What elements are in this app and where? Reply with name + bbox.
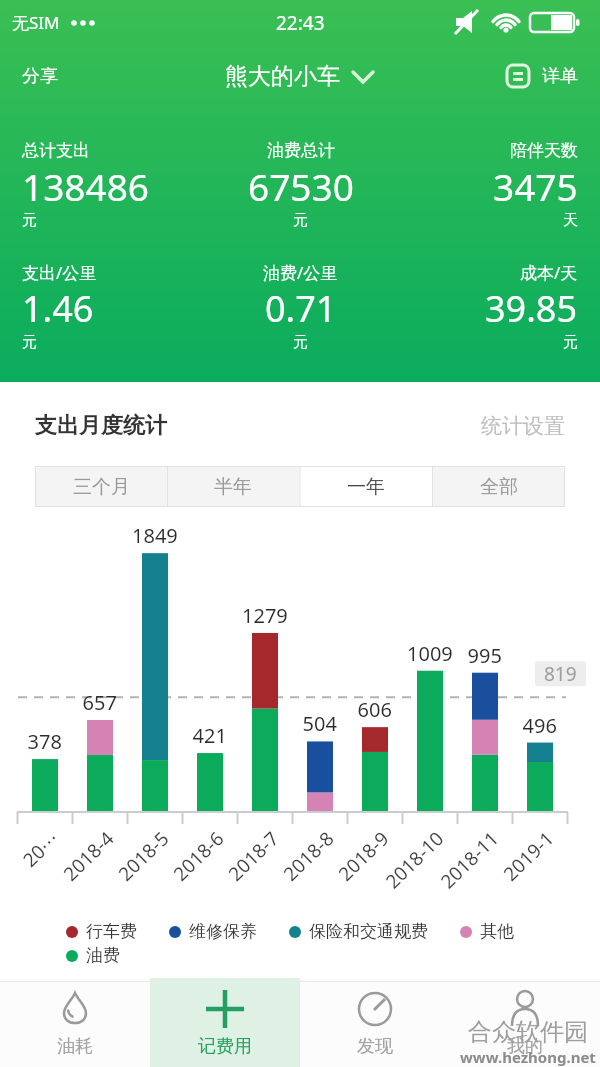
button[interactable]: 一年 — [299, 466, 432, 507]
staticText: 无SIM — [12, 11, 60, 34]
staticText: 全部 — [480, 475, 518, 499]
staticText: 半年 — [214, 475, 252, 499]
staticText: 元 — [293, 211, 308, 230]
staticText: 元 — [22, 211, 37, 230]
staticText: 总计支出 — [22, 140, 90, 161]
staticText: www.hezhong.net — [460, 1047, 596, 1067]
button[interactable]: 发现 — [300, 978, 450, 1067]
staticText: 成本/天 — [520, 261, 578, 284]
button[interactable]: 分享 — [22, 65, 58, 88]
staticText: 一年 — [347, 475, 385, 499]
button[interactable]: 半年 — [167, 466, 299, 507]
staticText: 39.85 — [485, 284, 578, 333]
staticText: 元 — [293, 333, 308, 352]
button[interactable]: 熊大的小车 — [225, 62, 375, 91]
staticText: 合众软件园 — [468, 1017, 588, 1047]
button[interactable]: 油耗 — [0, 978, 150, 1067]
staticText: 油费总计 — [267, 140, 335, 161]
staticText: 其他 — [480, 921, 514, 942]
button[interactable]: 我的 — [450, 978, 600, 1067]
button[interactable]: 记费用 — [150, 978, 300, 1067]
staticText: 陪伴天数 — [510, 140, 578, 161]
staticText: 67530 — [248, 161, 354, 211]
staticText: 138486 — [22, 161, 149, 211]
button[interactable]: 统计设置 — [481, 413, 565, 439]
staticText: 油费 — [86, 945, 120, 966]
staticText: 1.46 — [22, 284, 94, 333]
staticText: 油耗 — [57, 1035, 93, 1058]
button[interactable]: 全部 — [432, 466, 565, 507]
staticText: 油费/公里 — [263, 261, 338, 284]
button[interactable]: 详单 — [506, 64, 578, 88]
staticText: 详单 — [542, 65, 578, 88]
staticText: 熊大的小车 — [225, 62, 340, 91]
staticText: 0.71 — [265, 284, 337, 333]
staticText: 3475 — [493, 161, 578, 211]
staticText: 元 — [22, 333, 37, 352]
staticText: 行车费 — [86, 921, 137, 942]
staticText: 我的 — [507, 1035, 543, 1058]
staticText: 支出月度统计 — [35, 412, 167, 440]
staticText: 22:43 — [276, 10, 325, 36]
staticText: 维修保养 — [189, 921, 257, 942]
staticText: 天 — [563, 211, 578, 230]
staticText: 记费用 — [198, 1035, 252, 1058]
staticText: 保险和交通规费 — [309, 921, 428, 942]
staticText: 发现 — [357, 1035, 393, 1058]
button[interactable]: 三个月 — [35, 466, 167, 507]
staticText: 支出/公里 — [22, 261, 97, 284]
staticText: 三个月 — [73, 475, 130, 499]
staticText: 分享 — [22, 65, 58, 88]
staticText: 元 — [563, 333, 578, 352]
